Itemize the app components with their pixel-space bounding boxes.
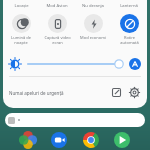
button[interactable]: App bbox=[18, 130, 38, 150]
button[interactable]: Lumină de noapte bbox=[3, 14, 39, 50]
button[interactable]: Edit tiles bbox=[110, 86, 123, 99]
button[interactable]: Locație bbox=[3, 0, 39, 11]
button[interactable]: Lanternă bbox=[111, 0, 147, 11]
staticText: Lanternă bbox=[120, 3, 138, 9]
staticText: Lumină de noapte bbox=[11, 35, 31, 45]
button[interactable]: Mod Avion bbox=[39, 0, 75, 11]
button[interactable]: Search bbox=[5, 113, 145, 127]
staticText: Locație bbox=[14, 3, 29, 9]
staticText: Captură video ecran bbox=[44, 35, 71, 45]
staticText: Mod Avion bbox=[46, 3, 68, 9]
staticText: Rotire automată bbox=[120, 35, 139, 45]
staticText: Numai apeluri de urgență bbox=[9, 90, 64, 96]
button[interactable]: Brightness bbox=[9, 58, 21, 70]
button[interactable]: Auto brightness bbox=[129, 58, 141, 70]
button[interactable]: Brightness slider bbox=[26, 58, 125, 70]
button[interactable]: App bbox=[49, 130, 69, 150]
button[interactable]: Mod economi bbox=[75, 14, 111, 50]
button[interactable]: Captură video ecran bbox=[39, 14, 75, 50]
button[interactable]: Rotire automată bbox=[111, 14, 147, 50]
button[interactable]: Settings bbox=[128, 86, 141, 99]
button[interactable]: App bbox=[81, 130, 101, 150]
button[interactable]: Nu deranja bbox=[75, 0, 111, 11]
button[interactable]: App bbox=[112, 130, 132, 150]
staticText: Mod economi bbox=[80, 35, 106, 40]
staticText: Nu deranja bbox=[82, 3, 104, 9]
